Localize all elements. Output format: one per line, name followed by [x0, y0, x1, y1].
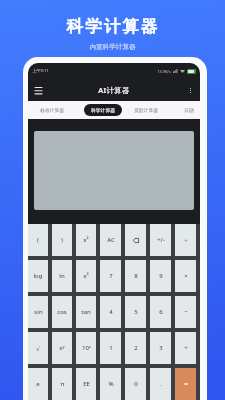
button[interactable]: Menu — [32, 84, 44, 96]
staticText: AI计算器 — [98, 85, 130, 95]
button[interactable]: = — [175, 368, 196, 400]
staticText: tan — [81, 308, 91, 316]
staticText: 上午9:11 — [32, 68, 49, 74]
button[interactable]: sin — [28, 296, 48, 328]
button[interactable]: ÷ — [175, 224, 196, 256]
button[interactable]: 7 — [100, 260, 121, 292]
button[interactable]: ln — [52, 260, 72, 292]
staticText: 内置科学计算器 — [89, 43, 136, 51]
staticText: ln — [59, 272, 65, 280]
button[interactable]: x³ — [76, 260, 96, 292]
staticText: 日期 — [184, 107, 194, 113]
button[interactable]: ( — [28, 224, 48, 256]
staticText: EE — [83, 380, 90, 388]
staticText: AC — [107, 236, 115, 244]
staticText: 科学计算器 — [91, 107, 115, 113]
button[interactable]: − — [175, 296, 196, 328]
staticText: sin — [34, 308, 43, 316]
button[interactable]: 6 — [150, 296, 171, 328]
button[interactable]: xʸ — [52, 332, 72, 364]
button[interactable]: 10ˣ — [76, 332, 96, 364]
staticText: 1 — [109, 344, 113, 352]
staticText: e — [36, 380, 40, 388]
button[interactable]: 4 — [100, 296, 121, 328]
staticText: 3 — [159, 344, 163, 352]
staticText: 7 — [109, 272, 113, 280]
staticText: √ — [36, 345, 40, 352]
button[interactable]: EE — [76, 368, 96, 400]
button[interactable]: Backspace — [125, 224, 146, 256]
staticText: 8 — [134, 272, 138, 280]
button[interactable]: +/- — [150, 224, 171, 256]
button[interactable]: log — [28, 260, 48, 292]
staticText: 标准计算器 — [40, 107, 64, 113]
button[interactable]: 1 — [100, 332, 121, 364]
staticText: × — [184, 272, 188, 280]
button[interactable]: 5 — [125, 296, 146, 328]
staticText: 0 — [134, 380, 138, 388]
staticText: x² — [83, 236, 89, 244]
button[interactable]: 日期 — [172, 104, 200, 116]
staticText: 2 — [134, 344, 138, 352]
staticText: 4 — [109, 308, 113, 316]
button[interactable]: More options — [184, 84, 196, 96]
button[interactable]: 科学计算器 — [84, 104, 122, 116]
staticText: 科学计算器 — [66, 16, 160, 37]
staticText: log — [33, 272, 43, 280]
button[interactable]: x² — [76, 224, 96, 256]
staticText: x³ — [83, 272, 89, 280]
staticText: − — [184, 308, 188, 316]
staticText: 6 — [159, 308, 163, 316]
button[interactable]: 9 — [150, 260, 171, 292]
button[interactable]: π — [52, 368, 72, 400]
staticText: +/- — [157, 236, 165, 244]
button[interactable]: e — [28, 368, 48, 400]
button[interactable]: × — [175, 260, 196, 292]
staticText: ) — [61, 236, 63, 244]
button[interactable]: 标准计算器 — [35, 104, 69, 116]
staticText: = — [184, 380, 188, 388]
staticText: xʸ — [59, 344, 65, 352]
button[interactable]: 8 — [125, 260, 146, 292]
staticText: % — [108, 380, 114, 388]
button[interactable]: 3 — [150, 332, 171, 364]
staticText: 13.9K/s — [157, 69, 171, 74]
button[interactable]: √ — [28, 332, 48, 364]
button[interactable]: 0 — [125, 368, 146, 400]
button[interactable]: cos — [52, 296, 72, 328]
staticText: . — [160, 380, 162, 388]
staticText: ÷ — [184, 236, 188, 244]
button[interactable]: 贷款计算器 — [129, 104, 163, 116]
staticText: π — [60, 380, 65, 388]
staticText: ( — [37, 236, 39, 244]
staticText: 9 — [159, 272, 163, 280]
button[interactable]: AC — [100, 224, 121, 256]
staticText: 5 — [134, 308, 138, 316]
button[interactable]: + — [175, 332, 196, 364]
staticText: 10ˣ — [82, 344, 91, 352]
staticText: cos — [57, 308, 67, 316]
button[interactable]: tan — [76, 296, 96, 328]
button[interactable]: 2 — [125, 332, 146, 364]
button[interactable]: ) — [52, 224, 72, 256]
staticText: 贷款计算器 — [134, 107, 158, 113]
staticText: + — [184, 344, 188, 352]
button[interactable]: % — [100, 368, 121, 400]
